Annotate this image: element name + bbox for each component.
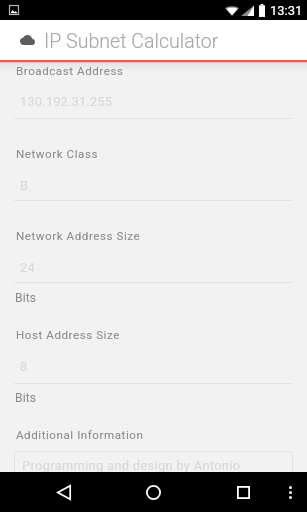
button[interactable]: IP Subnet Calculator — [0, 20, 307, 60]
staticText: Host Address Size — [16, 328, 120, 342]
button[interactable]: Back — [49, 477, 79, 507]
staticText: Network Class — [16, 147, 99, 161]
staticText: 13:31 — [270, 3, 303, 18]
staticText: Bits — [15, 291, 37, 305]
staticText: Broadcast Address — [16, 64, 124, 78]
staticText: Network Address Size — [16, 229, 141, 243]
staticText: Programming and design by Antonio — [22, 458, 241, 473]
staticText: IP Subnet Calculator — [44, 30, 219, 53]
button[interactable] — [14, 451, 293, 487]
staticText: 130.192.31.255 — [20, 94, 113, 109]
staticText: 24 — [20, 260, 35, 275]
staticText: Bits — [15, 391, 37, 405]
staticText: 8 — [20, 359, 28, 374]
button[interactable]: Home — [138, 477, 168, 507]
staticText: Additional Information — [16, 428, 144, 442]
staticText: B — [20, 178, 29, 193]
button[interactable]: Recents — [228, 477, 258, 507]
button[interactable]: More options — [278, 480, 303, 505]
